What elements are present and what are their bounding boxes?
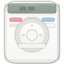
button[interactable]: Fan mode [6, 14, 9, 18]
button[interactable]: Heat mode [2, 14, 5, 18]
button[interactable]: Timer [2, 18, 7, 21]
button[interactable]: Cool mode [10, 14, 13, 18]
button[interactable]: Fan speed [8, 18, 13, 21]
button[interactable]: Power [4, 34, 11, 38]
button[interactable]: Display [2, 3, 13, 10]
button[interactable]: Temperature control pad [3, 23, 11, 31]
